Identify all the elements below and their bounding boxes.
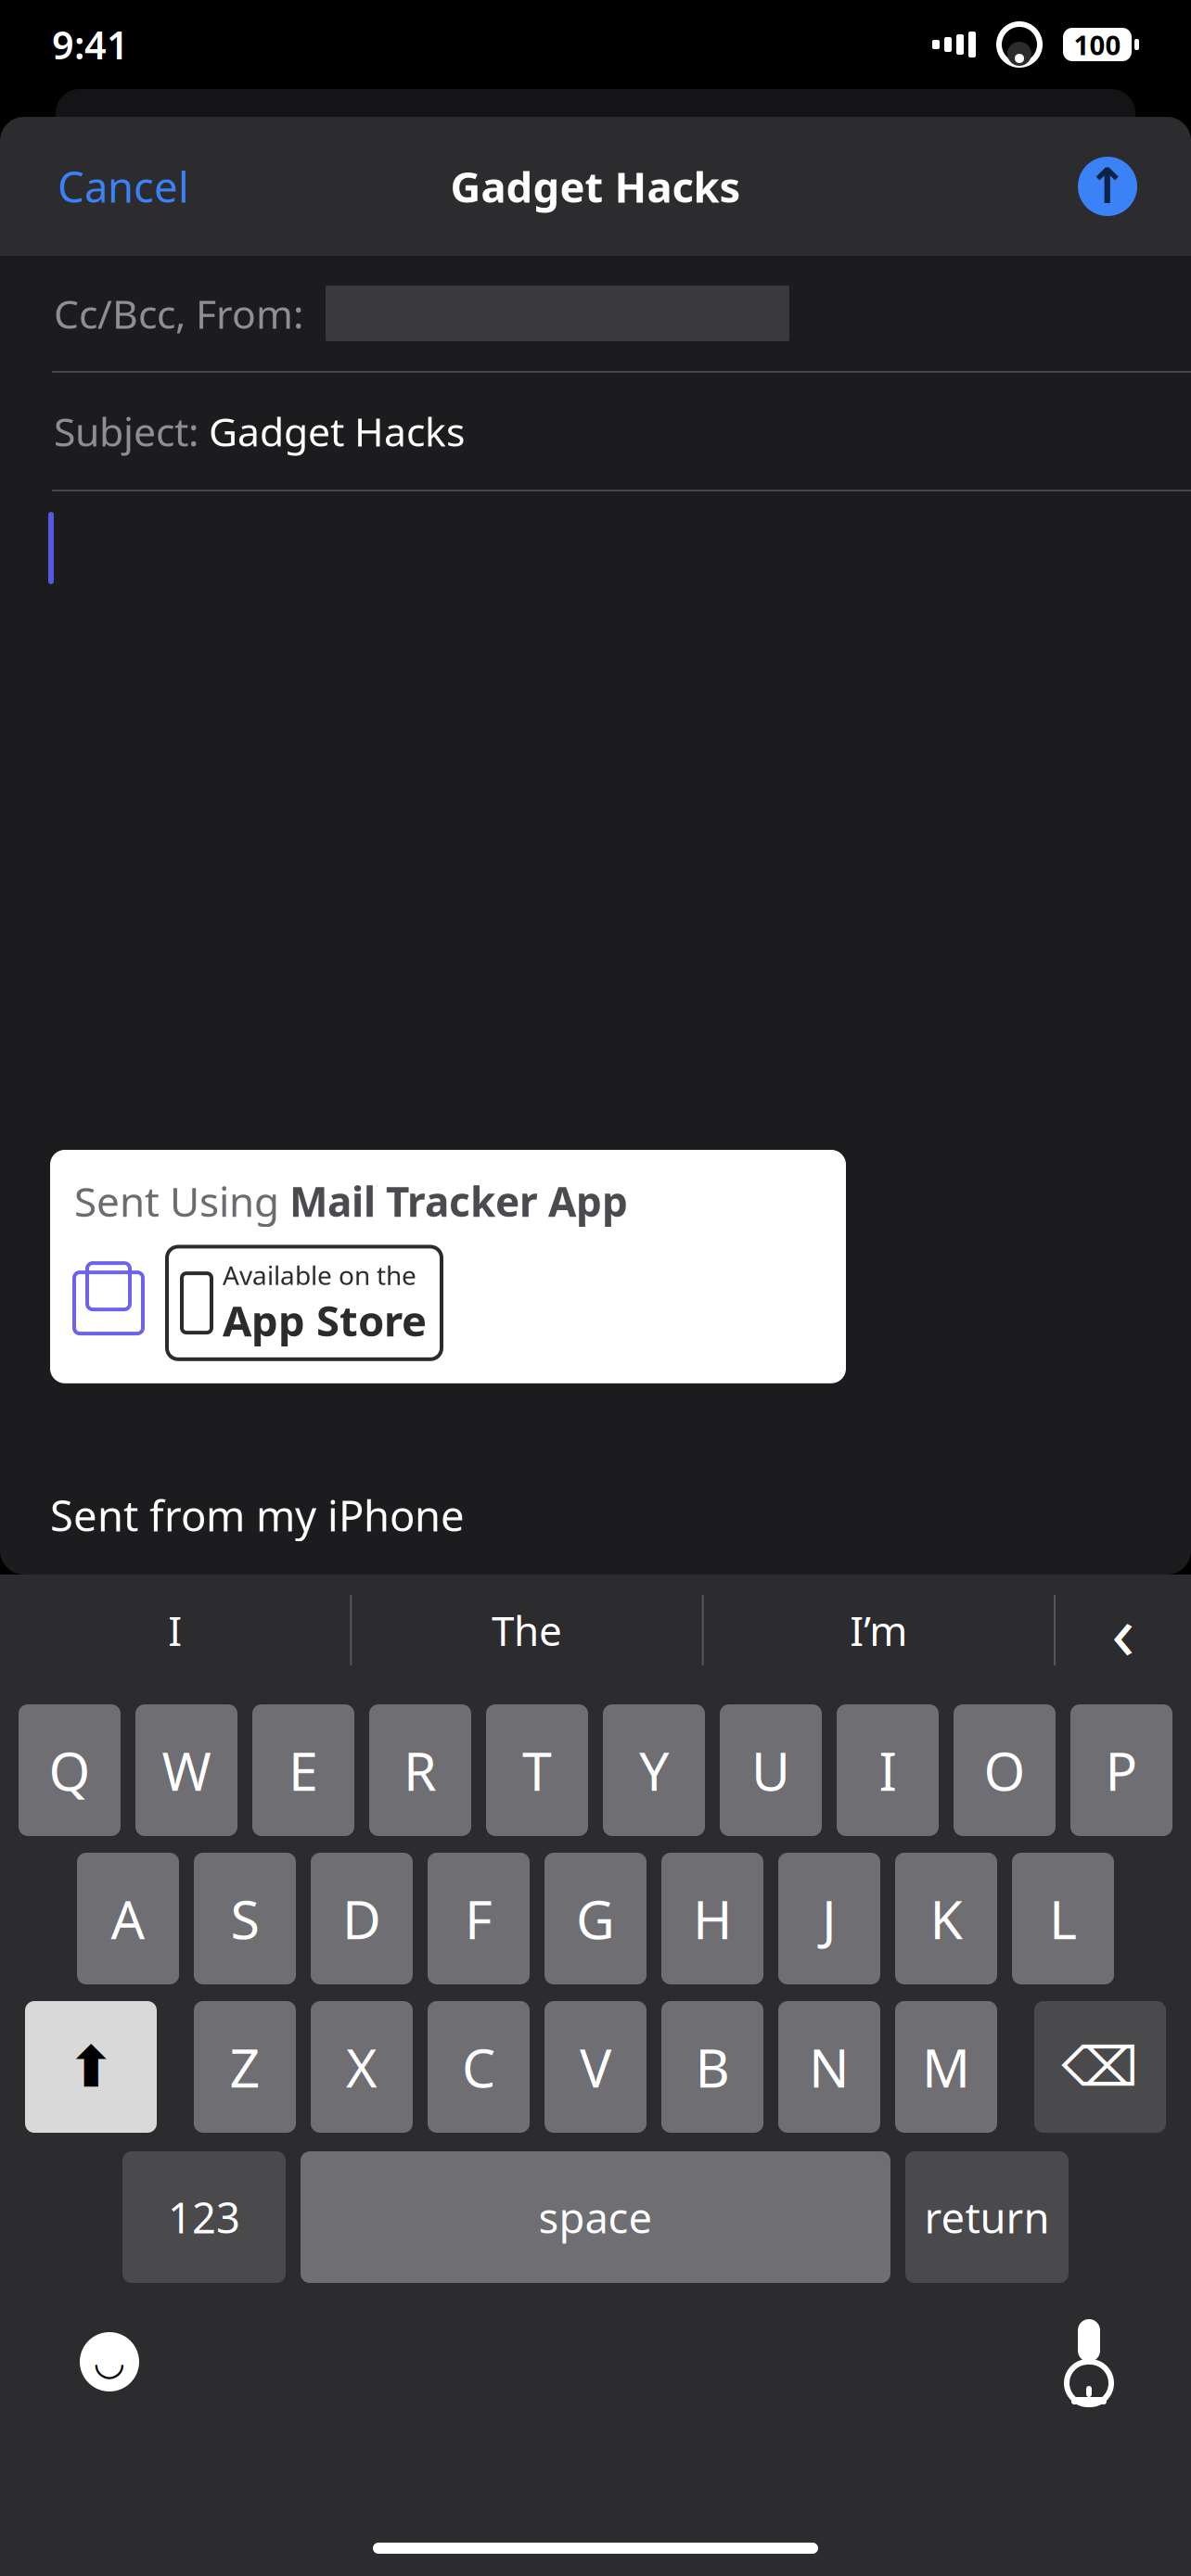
staticText: S xyxy=(231,1883,259,1954)
staticText: ↑ xyxy=(1087,158,1128,214)
staticText: Cancel xyxy=(58,158,189,214)
button[interactable]: U xyxy=(720,1704,822,1836)
button[interactable]: A xyxy=(77,1853,179,1984)
button[interactable]: Emoji keyboard xyxy=(61,2314,158,2410)
staticText: U xyxy=(751,1735,790,1805)
staticText: I xyxy=(879,1735,896,1805)
button[interactable]: H xyxy=(661,1853,763,1984)
button[interactable]: The xyxy=(352,1575,702,1686)
button[interactable]: J xyxy=(778,1853,880,1984)
staticText: Gadget Hacks xyxy=(209,405,465,458)
button[interactable]: L xyxy=(1012,1853,1114,1984)
staticText: Gadget Hacks xyxy=(450,158,741,214)
staticText: 100 xyxy=(1074,26,1121,63)
staticText: ⬆ xyxy=(67,2035,115,2099)
staticText: Q xyxy=(49,1735,90,1805)
staticText: Y xyxy=(639,1735,669,1805)
button[interactable]: space xyxy=(301,2151,890,2283)
staticText: Mail Tracker App xyxy=(289,1174,628,1228)
staticText: F xyxy=(465,1883,493,1954)
staticText: Available on the xyxy=(223,1258,416,1292)
staticText: I’m xyxy=(850,1603,907,1657)
button[interactable]: W xyxy=(135,1704,237,1836)
staticText: ‹ xyxy=(1111,1579,1135,1681)
staticText: 9:41 xyxy=(52,19,129,70)
staticText: M xyxy=(922,2032,970,2102)
button[interactable]: D xyxy=(311,1853,413,1984)
staticText: ◡ xyxy=(95,2341,124,2383)
staticText: G xyxy=(576,1883,615,1954)
staticText: A xyxy=(111,1883,145,1954)
staticText: K xyxy=(930,1883,962,1954)
staticText: Z xyxy=(230,2032,260,2102)
button[interactable]: Cancel xyxy=(46,144,200,229)
staticText: V xyxy=(580,2032,611,2102)
button[interactable]: E xyxy=(252,1704,354,1836)
staticText: Subject: xyxy=(54,405,209,458)
button[interactable]: Dictation xyxy=(1048,2302,1130,2422)
button[interactable]: Q xyxy=(19,1704,121,1836)
button[interactable]: I xyxy=(0,1575,350,1686)
button[interactable]: Y xyxy=(603,1704,705,1836)
button[interactable]: return xyxy=(905,2151,1069,2283)
button[interactable]: N xyxy=(778,2001,880,2133)
staticText: J xyxy=(822,1883,837,1954)
button[interactable]: Previous suggestions xyxy=(1056,1575,1191,1686)
staticText: L xyxy=(1049,1883,1077,1954)
staticText: App Store xyxy=(223,1292,427,1348)
staticText: Sent Using xyxy=(74,1174,289,1228)
staticText: E xyxy=(288,1735,318,1805)
button[interactable]: I xyxy=(837,1704,939,1836)
staticText: T xyxy=(522,1735,552,1805)
staticText: ⌫ xyxy=(1062,2036,1139,2098)
staticText: The xyxy=(492,1603,562,1657)
button[interactable]: X xyxy=(311,2001,413,2133)
staticText: R xyxy=(403,1735,437,1805)
staticText: Cc/Bcc, From: xyxy=(54,287,303,340)
staticText: return xyxy=(924,2189,1050,2245)
button[interactable]: Z xyxy=(194,2001,296,2133)
button[interactable]: K xyxy=(895,1853,997,1984)
button[interactable]: F xyxy=(428,1853,530,1984)
staticText: P xyxy=(1105,1735,1138,1805)
button[interactable]: Send xyxy=(1070,149,1145,223)
button[interactable]: S xyxy=(194,1853,296,1984)
button[interactable]: R xyxy=(369,1704,471,1836)
staticText: 123 xyxy=(168,2189,240,2245)
staticText: Sent from my iPhone xyxy=(50,1487,465,1543)
staticText: D xyxy=(342,1883,381,1954)
button[interactable]: G xyxy=(544,1853,647,1984)
button[interactable]: Shift xyxy=(25,2001,157,2133)
button[interactable]: C xyxy=(428,2001,530,2133)
staticText: X xyxy=(346,2032,378,2102)
staticText: I xyxy=(168,1603,182,1657)
button[interactable]: T xyxy=(486,1704,588,1836)
staticText: space xyxy=(538,2189,653,2245)
button[interactable]: P xyxy=(1070,1704,1172,1836)
staticText: B xyxy=(695,2032,730,2102)
button[interactable]: 123 xyxy=(122,2151,286,2283)
staticText: W xyxy=(162,1735,211,1805)
button[interactable]: O xyxy=(954,1704,1056,1836)
button[interactable]: I’m xyxy=(704,1575,1054,1686)
staticText: O xyxy=(984,1735,1025,1805)
button[interactable]: B xyxy=(661,2001,763,2133)
button[interactable]: Delete xyxy=(1034,2001,1166,2133)
button[interactable]: M xyxy=(895,2001,997,2133)
staticText: C xyxy=(462,2032,495,2102)
button[interactable]: V xyxy=(544,2001,647,2133)
staticText: N xyxy=(809,2032,850,2102)
staticText: H xyxy=(693,1883,732,1954)
